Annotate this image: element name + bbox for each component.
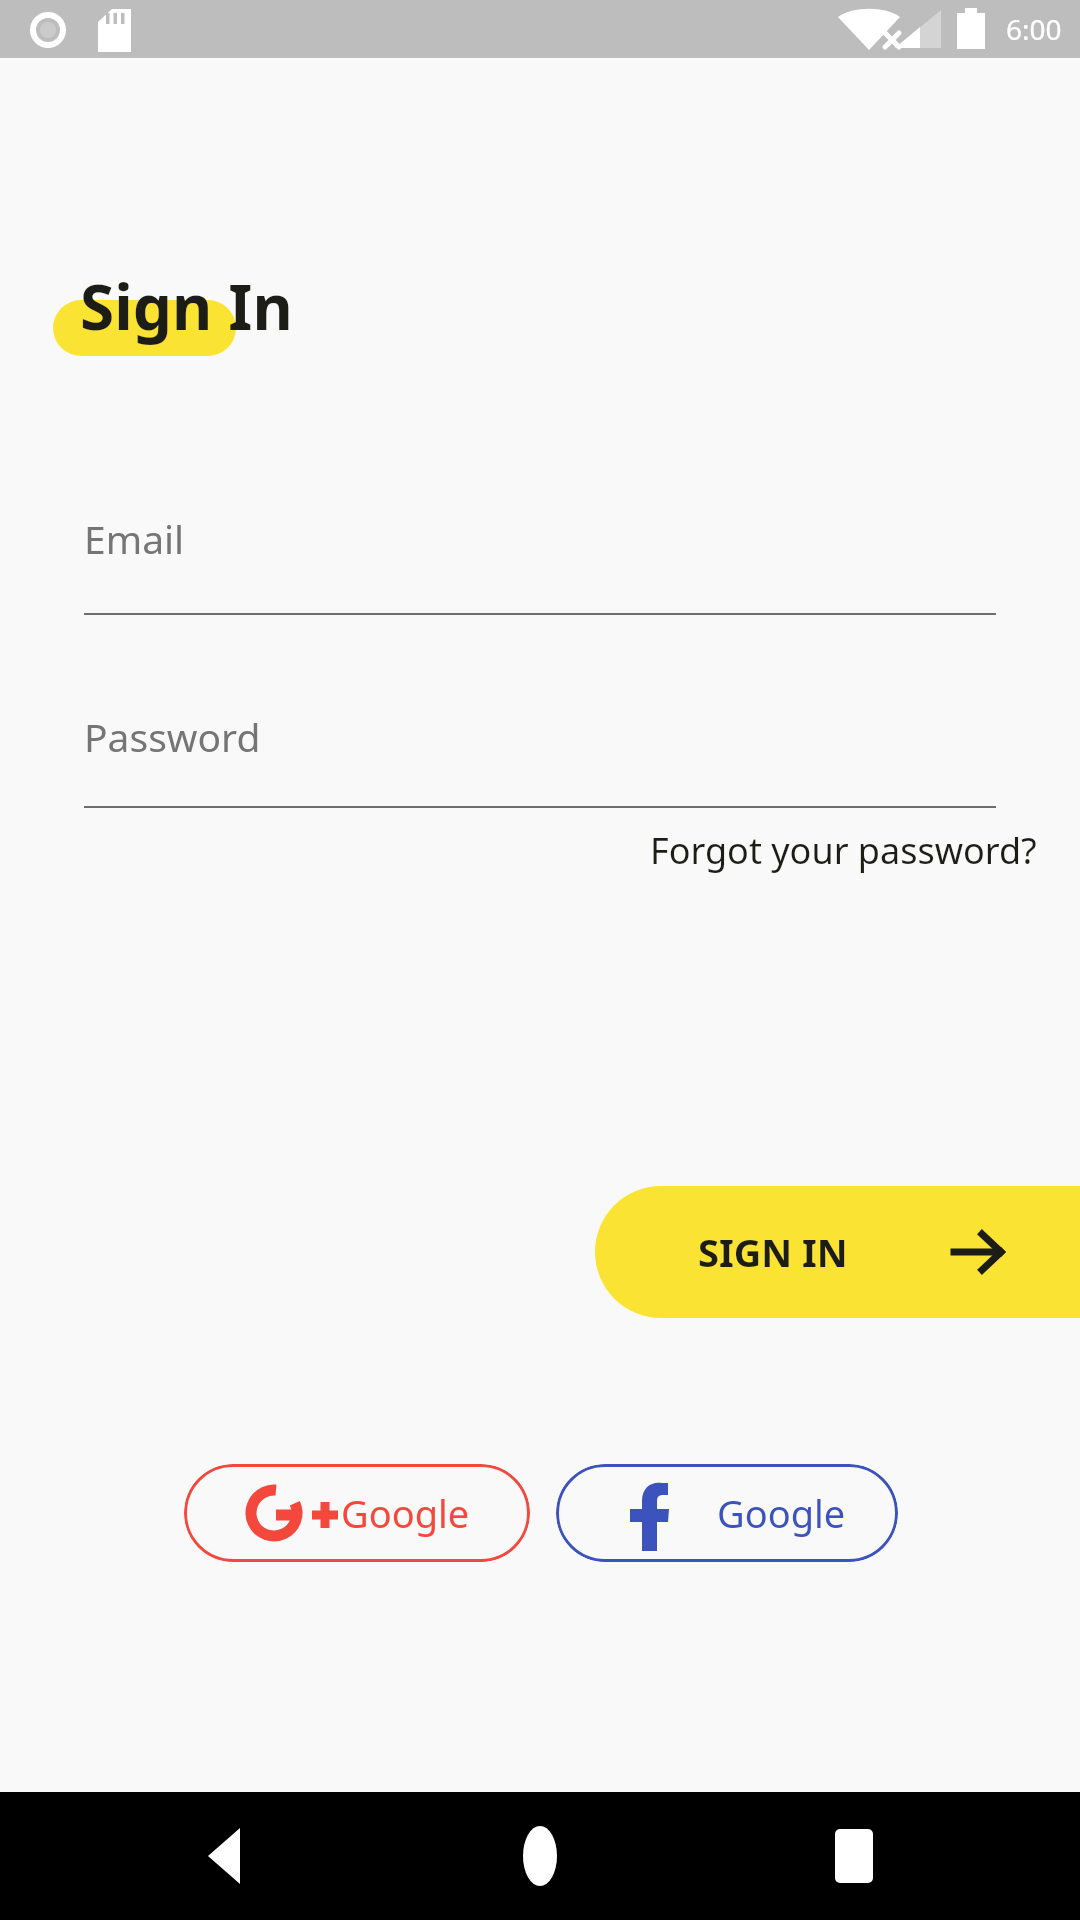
button[interactable]: Email — [84, 490, 996, 615]
staticText: Email — [84, 512, 185, 565]
button[interactable]: SIGN IN — [595, 1186, 1080, 1318]
button[interactable]: Google — [556, 1464, 898, 1562]
staticText: Google — [341, 1487, 470, 1539]
button[interactable]: Back — [190, 1820, 262, 1892]
button[interactable]: Home — [504, 1820, 576, 1892]
button[interactable]: Google — [184, 1464, 530, 1562]
staticText: Google — [717, 1487, 846, 1539]
staticText: Sign In — [80, 264, 293, 348]
staticText: 6:00 — [1006, 10, 1062, 48]
button[interactable]: Recent apps — [818, 1820, 890, 1892]
button[interactable]: Forgot your password? — [640, 818, 1047, 883]
staticText: Password — [84, 710, 261, 763]
button[interactable]: Password — [84, 688, 996, 808]
staticText: SIGN IN — [698, 1226, 848, 1278]
staticText: Forgot your password? — [650, 826, 1037, 875]
